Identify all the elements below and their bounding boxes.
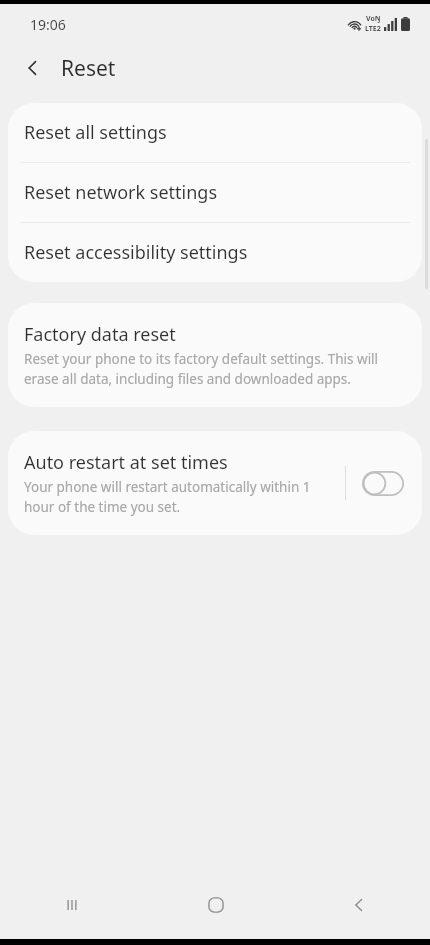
staticText: Reset all settings — [24, 120, 167, 145]
staticText: 19:06 — [30, 15, 66, 34]
staticText: Reset — [61, 54, 116, 83]
staticText: Auto restart at set times — [24, 450, 228, 475]
staticText: Your phone will restart automatically wi… — [24, 478, 341, 516]
button[interactable]: Factory data reset — [8, 303, 422, 407]
button[interactable]: Auto restart at set times toggle — [360, 463, 406, 503]
button[interactable]: Back — [287, 871, 430, 939]
button[interactable]: Reset network settings — [8, 163, 422, 222]
staticText: Reset your phone to its factory default … — [24, 350, 402, 388]
button[interactable]: Recent apps — [0, 871, 144, 939]
staticText: VoŊ — [366, 14, 381, 24]
button[interactable]: Reset all settings — [8, 103, 422, 162]
button[interactable]: Reset accessibility settings — [8, 223, 422, 282]
staticText: LTE2 — [365, 24, 381, 34]
button[interactable]: Back — [16, 51, 50, 85]
button[interactable]: Auto restart at set times — [8, 431, 422, 535]
button[interactable]: Home — [144, 871, 287, 939]
staticText: Reset network settings — [24, 180, 218, 205]
staticText: Factory data reset — [24, 322, 176, 347]
staticText: Reset accessibility settings — [24, 240, 248, 265]
